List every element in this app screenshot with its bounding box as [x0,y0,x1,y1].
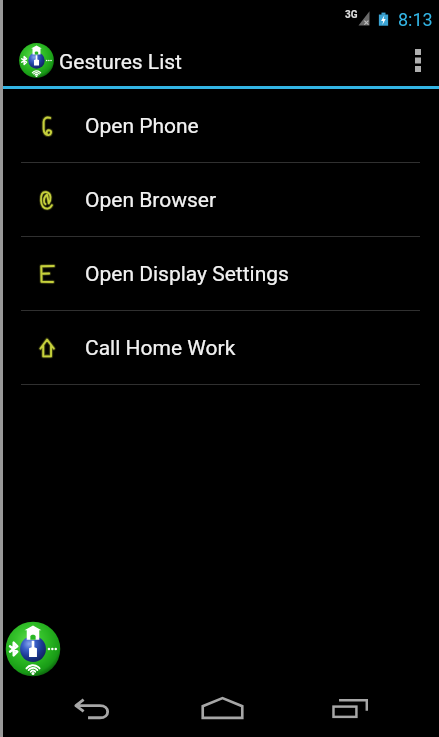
staticText: Gestures List [59,50,182,75]
staticText: 3G [345,9,358,21]
staticText: 8:13 [398,9,433,30]
button[interactable]: Gesture launcher [4,620,62,678]
button[interactable]: Open Browser [0,163,439,237]
button[interactable]: Recent apps [310,682,390,734]
button[interactable]: More options [397,32,439,89]
button[interactable]: Home [182,682,262,734]
button[interactable]: Open Phone [0,89,439,163]
staticText: Open Display Settings [85,262,289,287]
staticText: Open Phone [85,114,199,139]
staticText: Call Home Work [85,336,236,361]
button[interactable]: Open Display Settings [0,237,439,311]
button[interactable]: Call Home Work [0,311,439,385]
button[interactable]: Back [52,682,132,734]
staticText: Open Browser [85,188,217,213]
